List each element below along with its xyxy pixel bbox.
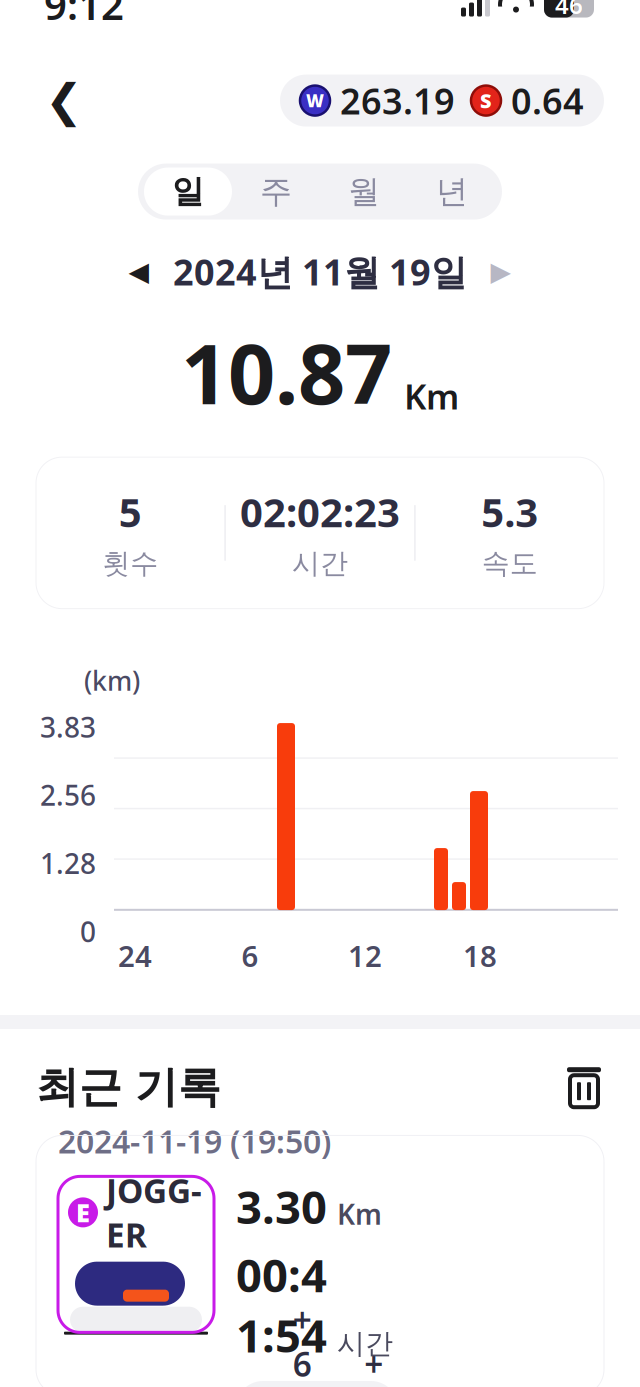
staticText: +61.33 xyxy=(293,1297,321,1387)
staticText: 최근 기록 xyxy=(36,1061,221,1113)
staticText: JOGGER xyxy=(106,1168,202,1257)
staticText: 일 xyxy=(172,172,204,211)
staticText: 횟수 xyxy=(102,546,158,581)
button[interactable]: Back xyxy=(36,73,92,129)
staticText: 46 xyxy=(555,0,583,20)
button[interactable]: 년 xyxy=(408,168,496,216)
staticText: 9:12 xyxy=(44,0,124,31)
staticText: 00:41:54 xyxy=(236,1245,327,1365)
staticText: Km xyxy=(337,1195,382,1233)
staticText: 10.87 xyxy=(181,317,392,427)
staticText: 02:02:23 xyxy=(240,485,400,538)
staticText: 속도 xyxy=(482,546,538,581)
button[interactable]: 월 xyxy=(320,168,408,216)
staticText: 주 xyxy=(260,172,292,211)
staticText: E xyxy=(76,1196,90,1229)
staticText: 5 xyxy=(119,485,142,538)
staticText: 12 xyxy=(348,936,382,975)
staticText: 3.83 xyxy=(40,708,96,745)
staticText: 6 xyxy=(241,936,258,975)
staticText: 0.64 xyxy=(511,77,584,124)
button[interactable]: 주 xyxy=(232,168,320,216)
staticText: 18 xyxy=(463,936,497,975)
staticText: 2024-11-19 (19:50) xyxy=(58,1120,331,1162)
button[interactable]: 일 xyxy=(144,168,232,216)
staticText: ❮ xyxy=(45,75,83,126)
staticText: 24 xyxy=(118,936,152,975)
staticText: 1.28 xyxy=(40,845,96,882)
staticText: 2024년 11월 19일 xyxy=(173,248,467,295)
staticText: W xyxy=(306,89,324,112)
staticText: ◀ xyxy=(128,256,149,287)
button[interactable]: Delete records xyxy=(564,1065,604,1109)
staticText: 2.56 xyxy=(40,776,96,814)
staticText: 시간 xyxy=(337,1327,393,1361)
staticText: S xyxy=(480,87,492,114)
staticText: +97 xyxy=(364,1342,383,1387)
staticText: 263.19 xyxy=(340,77,455,124)
staticText: 년 xyxy=(436,172,468,211)
staticText: Km xyxy=(404,373,459,419)
button[interactable]: Next day xyxy=(477,249,525,293)
staticText: 0 xyxy=(80,913,96,950)
staticText: 3.30 xyxy=(236,1176,327,1237)
staticText: ▶ xyxy=(490,256,511,287)
button[interactable]: 2024-11-19 (19:50) xyxy=(36,1135,604,1387)
staticText: 5.3 xyxy=(481,485,538,538)
staticText: 시간 xyxy=(292,546,348,581)
staticText: 월 xyxy=(348,172,380,211)
staticText: (km) xyxy=(84,663,140,698)
button[interactable]: W xyxy=(280,75,604,127)
button[interactable]: Previous day xyxy=(115,249,163,293)
